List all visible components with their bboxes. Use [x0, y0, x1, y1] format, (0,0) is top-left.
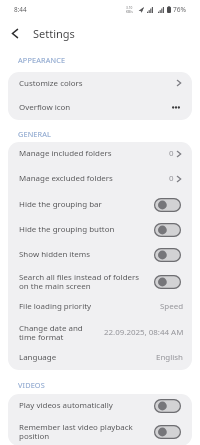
staticText: KB/s: [126, 10, 133, 14]
button[interactable]: Search all files instead of folders on t…: [8, 268, 192, 295]
button[interactable]: Customize colors: [8, 72, 192, 95]
staticText: 22.09.2025, 08:44 AM: [104, 327, 184, 338]
staticText: Speed: [160, 301, 184, 312]
staticText: Show hidden items: [19, 249, 154, 260]
button[interactable]: Back: [0, 19, 29, 48]
staticText: Play videos automatically: [19, 400, 154, 411]
staticText: 3.10: [126, 6, 133, 10]
staticText: Remember last video playback position: [19, 422, 154, 441]
button[interactable]: Play videos automatically: [8, 394, 192, 418]
button[interactable]: Show hidden items: [8, 242, 192, 267]
staticText: 76%: [173, 5, 187, 14]
staticText: Search all files instead of folders on t…: [19, 272, 154, 291]
staticText: 0: [169, 173, 174, 184]
staticText: Hide the grouping button: [19, 224, 154, 235]
button[interactable]: File loading priority: [8, 294, 192, 319]
staticText: English: [156, 352, 184, 363]
staticText: VIDEOS: [18, 380, 45, 390]
staticText: Settings: [33, 26, 75, 41]
staticText: File loading priority: [19, 301, 160, 312]
staticText: Hide the grouping bar: [19, 199, 154, 210]
staticText: 0: [169, 148, 174, 159]
staticText: Customize colors: [19, 78, 174, 89]
staticText: GENERAL: [18, 129, 52, 139]
button[interactable]: Hide the grouping bar: [8, 192, 192, 217]
button[interactable]: Remember last video playback position: [8, 418, 192, 445]
button[interactable]: Manage excluded folders: [8, 166, 192, 191]
staticText: 8:44: [14, 5, 27, 14]
button[interactable]: Overflow icon: [8, 95, 192, 119]
staticText: Overflow icon: [19, 102, 172, 113]
button[interactable]: Language: [8, 346, 192, 369]
staticText: APPEARANCE: [18, 55, 66, 65]
staticText: Manage included folders: [19, 148, 169, 159]
button[interactable]: Hide the grouping button: [8, 217, 192, 242]
staticText: Change date and time format: [19, 323, 104, 342]
staticText: Language: [19, 352, 156, 363]
button[interactable]: Change date and time format: [8, 319, 192, 346]
staticText: Manage excluded folders: [19, 173, 169, 184]
button[interactable]: Manage included folders: [8, 142, 192, 166]
